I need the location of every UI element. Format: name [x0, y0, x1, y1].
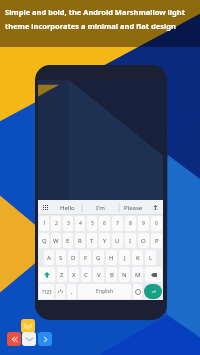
button[interactable]: U: [112, 233, 123, 248]
button[interactable]: Apps: [40, 202, 51, 213]
button[interactable]: W: [51, 233, 61, 248]
staticText: T: [90, 237, 94, 245]
staticText: Y: [103, 237, 107, 245]
button[interactable]: G: [93, 250, 104, 265]
button[interactable]: Notes: [21, 319, 35, 333]
button[interactable]: English: [78, 284, 131, 299]
staticText: L: [149, 254, 153, 262]
button[interactable]: Previous: [7, 332, 21, 346]
staticText: Please: [124, 204, 143, 212]
staticText: 9: [142, 220, 145, 227]
button[interactable]: Y: [99, 233, 110, 248]
staticText: B: [110, 271, 114, 279]
staticText: 5: [91, 220, 94, 227]
staticText: I: [129, 237, 132, 245]
button[interactable]: ,: [67, 284, 76, 299]
button[interactable]: Voice input: [56, 284, 65, 299]
staticText: E: [66, 237, 70, 245]
button[interactable]: B: [106, 267, 117, 282]
staticText: J: [124, 254, 126, 262]
staticText: I'm: [96, 204, 105, 212]
staticText: 1: [43, 220, 46, 227]
staticText: 4: [79, 220, 82, 227]
staticText: 2: [55, 220, 58, 227]
staticText: R: [78, 237, 82, 245]
button[interactable]: 2: [51, 216, 61, 231]
button[interactable]: O: [138, 233, 149, 248]
button[interactable]: V: [93, 267, 104, 282]
button[interactable]: 8: [125, 216, 136, 231]
staticText: Q: [42, 237, 47, 245]
staticText: N: [122, 271, 127, 279]
button[interactable]: H: [106, 250, 117, 265]
staticText: V: [97, 271, 101, 279]
staticText: 3: [67, 220, 70, 227]
button[interactable]: 6: [99, 216, 110, 231]
button[interactable]: 3: [63, 216, 73, 231]
button[interactable]: Expand suggestions: [150, 202, 161, 213]
button[interactable]: S: [56, 250, 66, 265]
button[interactable]: T: [87, 233, 97, 248]
button[interactable]: Backspace: [145, 267, 162, 282]
staticText: M: [135, 271, 141, 279]
staticText: H: [109, 254, 114, 262]
button[interactable]: P: [151, 233, 162, 248]
button[interactable]: L: [145, 250, 156, 265]
button[interactable]: Enter: [144, 284, 162, 299]
staticText: 0: [155, 220, 158, 227]
staticText: X: [72, 271, 76, 279]
button[interactable]: F: [80, 250, 91, 265]
staticText: ,: [71, 288, 73, 296]
staticText: S: [59, 254, 63, 262]
button[interactable]: Next: [38, 332, 52, 346]
button[interactable]: I'm: [84, 200, 117, 215]
button[interactable]: Hello: [51, 200, 84, 215]
button[interactable]: K: [132, 250, 143, 265]
button[interactable]: 0: [151, 216, 162, 231]
button[interactable]: Shift: [39, 267, 55, 282]
button[interactable]: Z: [57, 267, 67, 282]
staticText: D: [71, 254, 76, 262]
staticText: C: [84, 271, 88, 279]
staticText: ?123: [42, 289, 52, 295]
button[interactable]: R: [75, 233, 85, 248]
button[interactable]: E: [63, 233, 73, 248]
button[interactable]: I: [125, 233, 136, 248]
button[interactable]: Emoji: [133, 284, 142, 299]
button[interactable]: J: [119, 250, 130, 265]
staticText: 7: [116, 220, 119, 227]
staticText: O: [141, 237, 146, 245]
button[interactable]: Q: [39, 233, 49, 248]
staticText: F: [84, 254, 88, 262]
button[interactable]: M: [132, 267, 143, 282]
staticText: U: [115, 237, 120, 245]
staticText: W: [53, 237, 59, 245]
button[interactable]: 1: [39, 216, 49, 231]
staticText: English: [96, 288, 114, 295]
button[interactable]: N: [119, 267, 130, 282]
staticText: G: [96, 254, 101, 262]
staticText: A: [47, 254, 51, 262]
button[interactable]: 4: [75, 216, 85, 231]
button[interactable]: C: [81, 267, 91, 282]
button[interactable]: D: [68, 250, 78, 265]
staticText: Hello: [60, 204, 75, 212]
button[interactable]: 7: [112, 216, 123, 231]
staticText: Z: [60, 271, 64, 279]
button[interactable]: 5: [87, 216, 97, 231]
staticText: K: [136, 254, 140, 262]
button[interactable]: X: [69, 267, 79, 282]
staticText: 8: [129, 220, 132, 227]
button[interactable]: Please: [117, 200, 150, 215]
staticText: theme incorporates a minimal and flat de…: [5, 21, 176, 31]
button[interactable]: ?123: [39, 284, 54, 299]
button[interactable]: A: [44, 250, 54, 265]
staticText: 6: [103, 220, 106, 227]
staticText: Simple and bold, the Android Marshmallow…: [5, 7, 185, 17]
staticText: P: [155, 237, 159, 245]
button[interactable]: 9: [138, 216, 149, 231]
button[interactable]: Mail: [22, 332, 36, 346]
